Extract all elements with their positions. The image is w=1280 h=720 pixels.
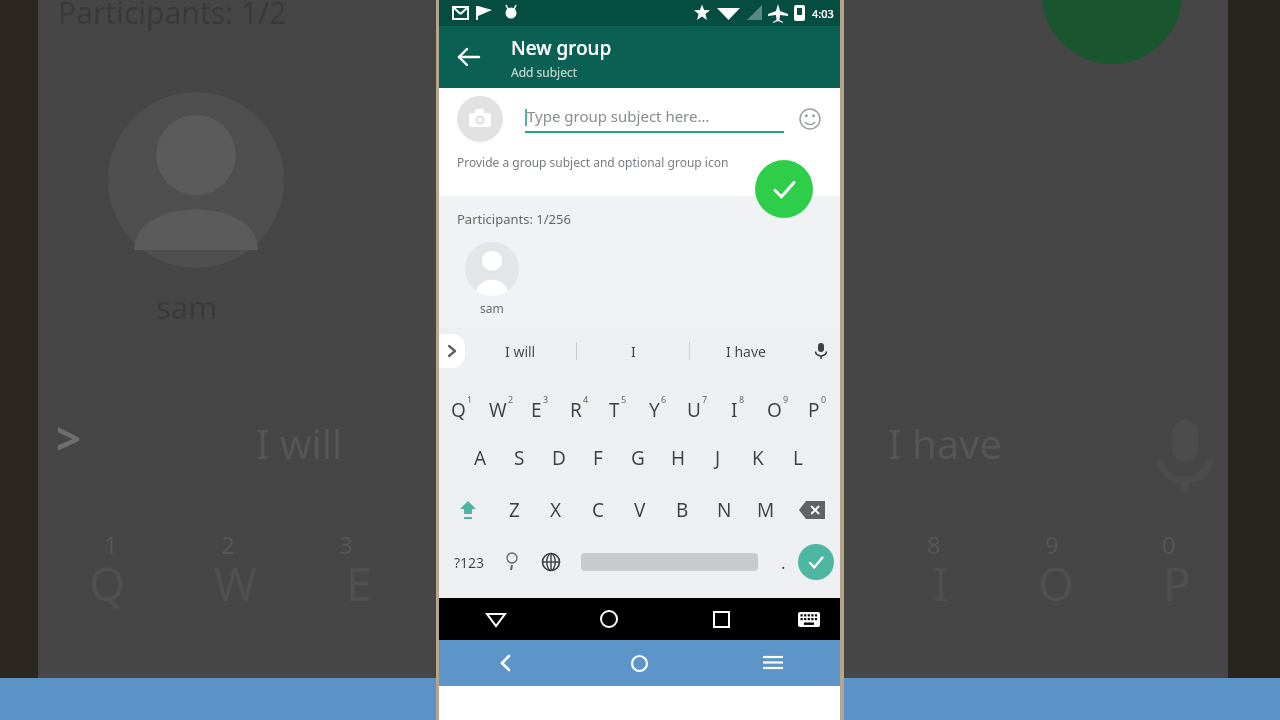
staticText: C: [592, 497, 605, 523]
staticText: M: [757, 497, 775, 523]
button[interactable]: H: [658, 432, 698, 484]
staticText: I will: [256, 416, 343, 470]
staticText: E: [531, 397, 542, 423]
staticText: Participants: 1/256: [457, 210, 571, 228]
button[interactable]: Switch keyboard: [778, 598, 840, 640]
button[interactable]: S: [500, 432, 539, 484]
staticText: 9: [783, 393, 789, 405]
button[interactable]: M: [745, 484, 787, 536]
button[interactable]: O: [757, 380, 797, 432]
button[interactable]: Change language: [531, 536, 571, 588]
button[interactable]: Emoji: [794, 103, 826, 135]
button[interactable]: Back: [447, 35, 491, 79]
button[interactable]: U: [677, 380, 717, 432]
button[interactable]: R: [559, 380, 598, 432]
button[interactable]: ?123: [445, 536, 493, 588]
button[interactable]: Add group icon: [457, 96, 503, 142]
button[interactable]: Recent apps: [665, 598, 778, 640]
staticText: Z: [509, 497, 520, 523]
staticText: U: [810, 552, 844, 615]
button[interactable]: I will: [465, 328, 576, 374]
button[interactable]: sam: [465, 242, 519, 316]
button[interactable]: Create group: [755, 160, 813, 218]
staticText: 7: [809, 528, 823, 561]
staticText: T: [609, 397, 620, 423]
button[interactable]: Backspace: [787, 484, 837, 536]
staticText: N: [717, 497, 732, 523]
staticText: O: [1038, 552, 1074, 615]
button[interactable]: A: [461, 432, 500, 484]
staticText: Add subject: [511, 64, 578, 80]
staticText: R: [461, 552, 490, 615]
staticText: 8: [739, 393, 745, 405]
button[interactable]: G: [618, 432, 658, 484]
button[interactable]: Enter: [798, 544, 834, 580]
staticText: I have: [726, 342, 766, 361]
staticText: V: [634, 497, 646, 523]
button[interactable]: E: [520, 380, 559, 432]
button[interactable]: D: [539, 432, 578, 484]
button[interactable]: C: [577, 484, 619, 536]
button[interactable]: L: [778, 432, 818, 484]
button[interactable]: Back: [439, 640, 572, 686]
staticText: J: [715, 445, 721, 471]
button[interactable]: X: [535, 484, 577, 536]
staticText: Provide a group subject and optional gro…: [457, 154, 729, 170]
button[interactable]: T: [598, 380, 637, 432]
staticText: 5: [574, 528, 588, 561]
button[interactable]: Z: [493, 484, 535, 536]
button[interactable]: Back: [439, 598, 552, 640]
staticText: G: [631, 445, 645, 471]
staticText: K: [752, 445, 764, 471]
button[interactable]: J: [698, 432, 738, 484]
button[interactable]: Type group subject here…: [525, 106, 784, 133]
staticText: 1: [104, 528, 118, 561]
staticText: F: [593, 445, 603, 471]
button[interactable]: W: [481, 380, 520, 432]
staticText: New group: [511, 35, 612, 61]
staticText: Y: [694, 552, 721, 615]
button[interactable]: .: [768, 536, 798, 588]
button[interactable]: Shift: [442, 484, 493, 536]
staticText: Participants: 1/2: [58, 0, 287, 33]
button[interactable]: Y: [637, 380, 677, 432]
button[interactable]: N: [703, 484, 745, 536]
button[interactable]: F: [578, 432, 618, 484]
button[interactable]: Expand suggestions: [439, 334, 465, 368]
button[interactable]: I have: [690, 328, 802, 374]
staticText: 4: [457, 528, 471, 561]
staticText: A: [474, 445, 487, 471]
button[interactable]: P: [797, 380, 837, 432]
button[interactable]: B: [661, 484, 703, 536]
staticText: S: [514, 445, 525, 471]
staticText: 1: [467, 393, 473, 405]
staticText: 9: [1045, 528, 1059, 561]
button[interactable]: I: [717, 380, 757, 432]
staticText: 7: [702, 393, 708, 405]
button[interactable]: I: [577, 328, 689, 374]
staticText: Q: [451, 397, 466, 423]
staticText: 2: [221, 528, 235, 561]
staticText: X: [550, 497, 562, 523]
staticText: E: [346, 552, 372, 615]
button[interactable]: V: [619, 484, 661, 536]
button[interactable]: Home: [552, 598, 665, 640]
staticText: >: [56, 408, 82, 468]
staticText: 8: [927, 528, 941, 561]
button[interactable]: Voice input: [802, 328, 840, 374]
staticText: 0: [1162, 528, 1176, 561]
button[interactable]: K: [738, 432, 778, 484]
staticText: Y: [649, 397, 660, 423]
button[interactable]: Q: [442, 380, 481, 432]
staticText: 3: [339, 528, 353, 561]
button[interactable]: Menu: [706, 640, 840, 686]
staticText: P: [1163, 552, 1191, 615]
staticText: D: [552, 445, 566, 471]
staticText: I have: [888, 416, 1002, 470]
staticText: W: [214, 552, 257, 615]
button[interactable]: Emoji keyboard: [493, 536, 531, 588]
button[interactable]: Home: [572, 640, 706, 686]
staticText: 5: [621, 393, 627, 405]
staticText: .: [781, 551, 786, 574]
